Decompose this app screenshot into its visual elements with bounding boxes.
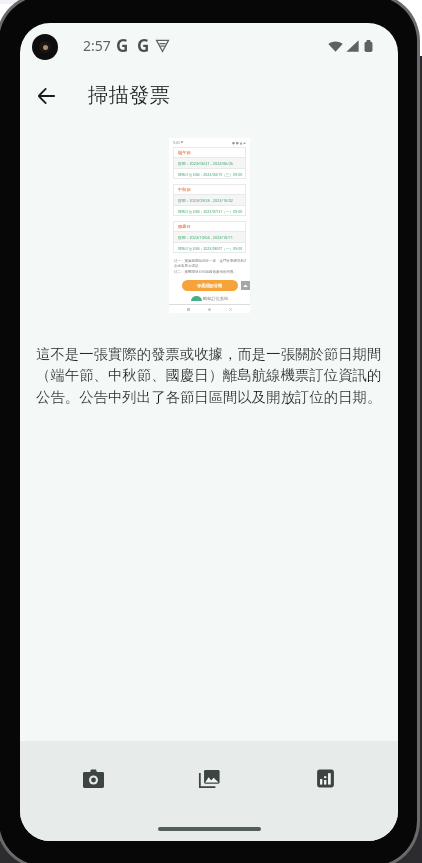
staticText: 孕產婦影分機: [197, 283, 223, 288]
staticText: 開放訂位日期：2023/04/19（三）09:00: [178, 172, 243, 177]
button[interactable]: Statistics: [267, 741, 383, 815]
button[interactable]: Gallery: [151, 741, 267, 815]
staticText: 2:57: [83, 36, 111, 55]
staticText: G: [116, 34, 129, 57]
staticText: 中秋節: [178, 187, 191, 192]
staticText: 9:43: [173, 140, 180, 145]
button[interactable]: Camera: [35, 741, 151, 815]
staticText: 開放訂位日期：2023/07/31（一）09:00: [178, 209, 243, 214]
staticText: 區間：2023/09/28 - 2023/10/02: [178, 198, 233, 203]
staticText: 區間：2023/10/04 - 2023/10/11: [178, 235, 233, 240]
staticText: 端午節: [178, 150, 191, 155]
staticText: 這不是一張實際的發票或收據，而是一張關於節日期間（端午節、中秋節、國慶日）離島航…: [36, 345, 382, 407]
staticText: 離島訂位系統: [203, 296, 229, 301]
staticText: ● ● ▲ ▰: [232, 140, 246, 145]
staticText: 開放訂位日期：2023/08/07（一）09:00: [178, 246, 243, 251]
staticText: 掃描發票: [88, 82, 170, 108]
staticText: 註一：實施期間為四年一度 金門冬季經常航向北走 全線客票之認証。 註二：實際開放…: [174, 258, 246, 274]
staticText: 國慶日: [178, 224, 191, 229]
button[interactable]: Back: [24, 74, 68, 118]
staticText: 區間：2023/06/21 - 2023/06/26: [178, 161, 233, 166]
button[interactable]: 孕產婦影分機: [182, 280, 238, 291]
staticText: G: [137, 34, 150, 57]
